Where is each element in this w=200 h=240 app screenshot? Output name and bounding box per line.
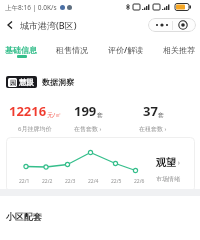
button[interactable]: 评价/解读 [108,44,144,55]
staticText: 套 [97,111,103,119]
staticText: 城市港湾(B区) [20,19,77,31]
staticText: 元/㎡ [47,111,62,119]
staticText: 市场情绪 [156,175,180,183]
staticText: 199 [74,102,97,120]
button[interactable]: 199 [70,102,106,133]
button[interactable]: 相关推荐 [163,45,195,55]
staticText: 22/3 [65,178,88,185]
button[interactable]: 基础信息 [5,45,37,55]
button[interactable]: 租售情况 [56,45,88,55]
staticText: 6月挂牌均价 [18,125,52,133]
button[interactable]: 12216 [0,102,70,133]
staticText: 园 [10,79,16,87]
staticText: 在售套数 › [74,125,102,133]
staticText: 在租套数 › [139,125,167,133]
staticText: 12216 [9,102,47,120]
button[interactable] [173,18,193,32]
button[interactable]: 观望 [156,156,180,183]
staticText: 小区配套 [6,211,42,222]
staticText: › [176,158,180,168]
button[interactable] [152,18,172,32]
staticText: 观望 [156,156,176,169]
staticText: 37 [143,102,158,120]
staticText: 慧眼 [19,78,34,87]
staticText: 套 [158,111,164,119]
button[interactable]: 37 [106,102,200,133]
staticText: 22/4 [88,178,111,185]
staticText: 22/5 [111,178,134,185]
staticText: 上午8:16 | 0.0K/s [5,3,57,12]
staticText: 22/6 [134,178,157,185]
button[interactable] [6,21,14,29]
staticText: 数据洞察 [42,77,74,87]
staticText: 22/1 [19,178,42,185]
staticText: 22/2 [42,178,65,185]
